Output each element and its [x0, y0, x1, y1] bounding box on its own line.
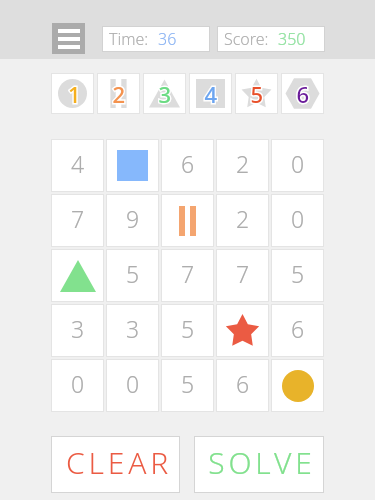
button[interactable] [281, 73, 324, 114]
button[interactable]: 9 [106, 194, 159, 247]
staticText: 2 [236, 203, 250, 234]
staticText: Score: [224, 28, 269, 50]
button[interactable] [97, 73, 140, 114]
staticText: Time: [109, 28, 149, 50]
button[interactable] [189, 73, 232, 114]
staticText: SOLVE [208, 442, 316, 483]
staticText: CLEAR [66, 442, 172, 483]
button[interactable]: 6 [216, 359, 269, 412]
staticText: 3 [71, 313, 85, 344]
staticText: 0 [291, 148, 305, 179]
button[interactable]: 5 [161, 304, 214, 357]
button[interactable]: Score: [217, 26, 325, 52]
button[interactable]: 0 [106, 359, 159, 412]
button[interactable] [51, 73, 94, 114]
button[interactable]: 5 [271, 249, 324, 302]
button[interactable] [106, 139, 159, 192]
staticText: 4 [71, 148, 85, 179]
button[interactable]: 4 [51, 139, 104, 192]
button[interactable]: 6 [161, 139, 214, 192]
staticText: 0 [126, 368, 140, 399]
button[interactable]: 5 [161, 359, 214, 412]
staticText: 7 [236, 258, 250, 289]
button[interactable] [51, 249, 104, 302]
button[interactable]: 3 [51, 304, 104, 357]
button[interactable]: 6 [271, 304, 324, 357]
button[interactable] [161, 194, 214, 247]
staticText: 9 [126, 203, 140, 234]
staticText: 6 [291, 313, 305, 344]
button[interactable]: 0 [51, 359, 104, 412]
staticText: 0 [291, 203, 305, 234]
staticText: 0 [71, 368, 85, 399]
staticText: 5 [181, 313, 195, 344]
staticText: 36 [158, 28, 177, 50]
button[interactable]: Menu [52, 23, 85, 54]
button[interactable]: Time: [102, 26, 210, 52]
staticText: 7 [181, 258, 195, 289]
staticText: 5 [291, 258, 305, 289]
staticText: 350 [278, 28, 306, 50]
button[interactable]: 2 [216, 139, 269, 192]
button[interactable]: 5 [106, 249, 159, 302]
button[interactable]: 0 [271, 194, 324, 247]
button[interactable]: 7 [161, 249, 214, 302]
button[interactable]: 2 [216, 194, 269, 247]
button[interactable]: 7 [51, 194, 104, 247]
button[interactable]: 7 [216, 249, 269, 302]
staticText: 6 [236, 368, 250, 399]
staticText: 5 [181, 368, 195, 399]
button[interactable] [143, 73, 186, 114]
button[interactable] [216, 304, 269, 357]
button[interactable]: SOLVE [194, 436, 324, 493]
button[interactable]: 0 [271, 139, 324, 192]
button[interactable] [235, 73, 278, 114]
staticText: 5 [126, 258, 140, 289]
button[interactable]: 3 [106, 304, 159, 357]
button[interactable] [271, 359, 324, 412]
staticText: 6 [181, 148, 195, 179]
staticText: 2 [236, 148, 250, 179]
button[interactable]: CLEAR [51, 436, 180, 493]
staticText: 7 [71, 203, 85, 234]
staticText: 3 [126, 313, 140, 344]
